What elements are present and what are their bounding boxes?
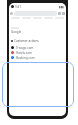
staticText: Customer actions <box>14 39 39 43</box>
staticText: 9:41 <box>15 5 21 9</box>
staticText: Trivago.com <box>16 46 34 50</box>
staticText: Google <box>11 30 22 34</box>
button[interactable]: Booking.com <box>11 55 64 60</box>
staticText: Booking.com <box>16 56 35 60</box>
staticText: Hotels.com <box>16 51 32 55</box>
button[interactable]: Trivago.com <box>11 45 64 50</box>
staticText: ▮▮▮ <box>59 5 64 8</box>
button[interactable]: Hotels.com <box>11 50 64 55</box>
